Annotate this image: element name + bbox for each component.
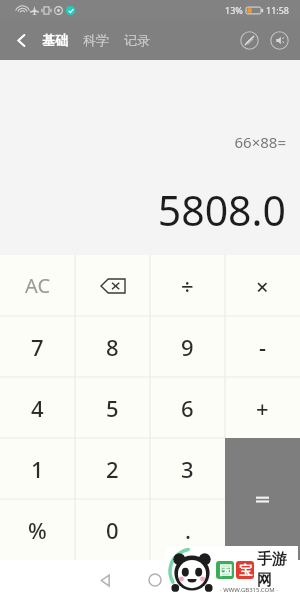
staticText: 3 <box>181 454 194 484</box>
staticText: . <box>185 515 191 545</box>
button[interactable]: 科学 <box>79 26 113 54</box>
button[interactable]: 2 <box>75 438 150 499</box>
staticText: % <box>28 515 47 545</box>
staticText: 基础 <box>42 32 68 48</box>
staticText: 66×88= <box>234 132 286 152</box>
staticText: 6 <box>181 393 194 423</box>
staticText: × <box>256 271 269 301</box>
button[interactable]: 6 <box>150 377 225 438</box>
button[interactable]: Vibration off <box>238 29 260 51</box>
button[interactable]: 3 <box>150 438 225 499</box>
button[interactable] <box>225 438 300 560</box>
staticText: 记录 <box>124 32 150 48</box>
button[interactable]: 9 <box>150 316 225 377</box>
button[interactable]: . <box>150 499 225 560</box>
staticText: 1 <box>31 454 44 484</box>
button[interactable]: Back <box>6 25 36 55</box>
button[interactable]: AC <box>0 255 75 316</box>
staticText: 国 <box>219 562 232 578</box>
staticText: - <box>259 332 267 362</box>
button[interactable]: 基础 <box>38 26 72 54</box>
staticText: 8 <box>106 332 119 362</box>
button[interactable]: 5 <box>75 377 150 438</box>
button[interactable]: Home <box>140 565 170 595</box>
staticText: 0 <box>106 515 119 545</box>
button[interactable]: ÷ <box>150 255 225 316</box>
button[interactable]: × <box>225 255 300 316</box>
button[interactable]: 4 <box>0 377 75 438</box>
staticText: 2 <box>106 454 119 484</box>
button[interactable]: - <box>225 316 300 377</box>
button[interactable]: + <box>225 377 300 438</box>
staticText: 13% <box>225 4 243 16</box>
staticText: 5 <box>106 393 119 423</box>
staticText: + <box>256 393 269 423</box>
staticText: · WWW.GB315.COM · <box>220 586 278 594</box>
staticText: ÷ <box>181 271 194 301</box>
button[interactable]: 0 <box>75 499 150 560</box>
button[interactable]: % <box>0 499 75 560</box>
button[interactable]: 8 <box>75 316 150 377</box>
staticText: 科学 <box>83 32 109 48</box>
staticText: 宝 <box>239 562 252 578</box>
button[interactable]: 记录 <box>120 26 154 54</box>
button[interactable]: Back <box>90 565 120 595</box>
staticText: 5808.0 <box>157 182 286 238</box>
staticText: 9 <box>181 332 194 362</box>
staticText: 4 <box>31 393 44 423</box>
button[interactable]: 7 <box>0 316 75 377</box>
staticText: 7 <box>31 332 44 362</box>
staticText: 11:58 <box>266 4 290 16</box>
staticText: 手游网 <box>257 550 298 590</box>
staticText: AC <box>25 272 51 299</box>
button[interactable]: Sound off <box>268 29 290 51</box>
button[interactable]: 1 <box>0 438 75 499</box>
button[interactable] <box>75 255 150 316</box>
